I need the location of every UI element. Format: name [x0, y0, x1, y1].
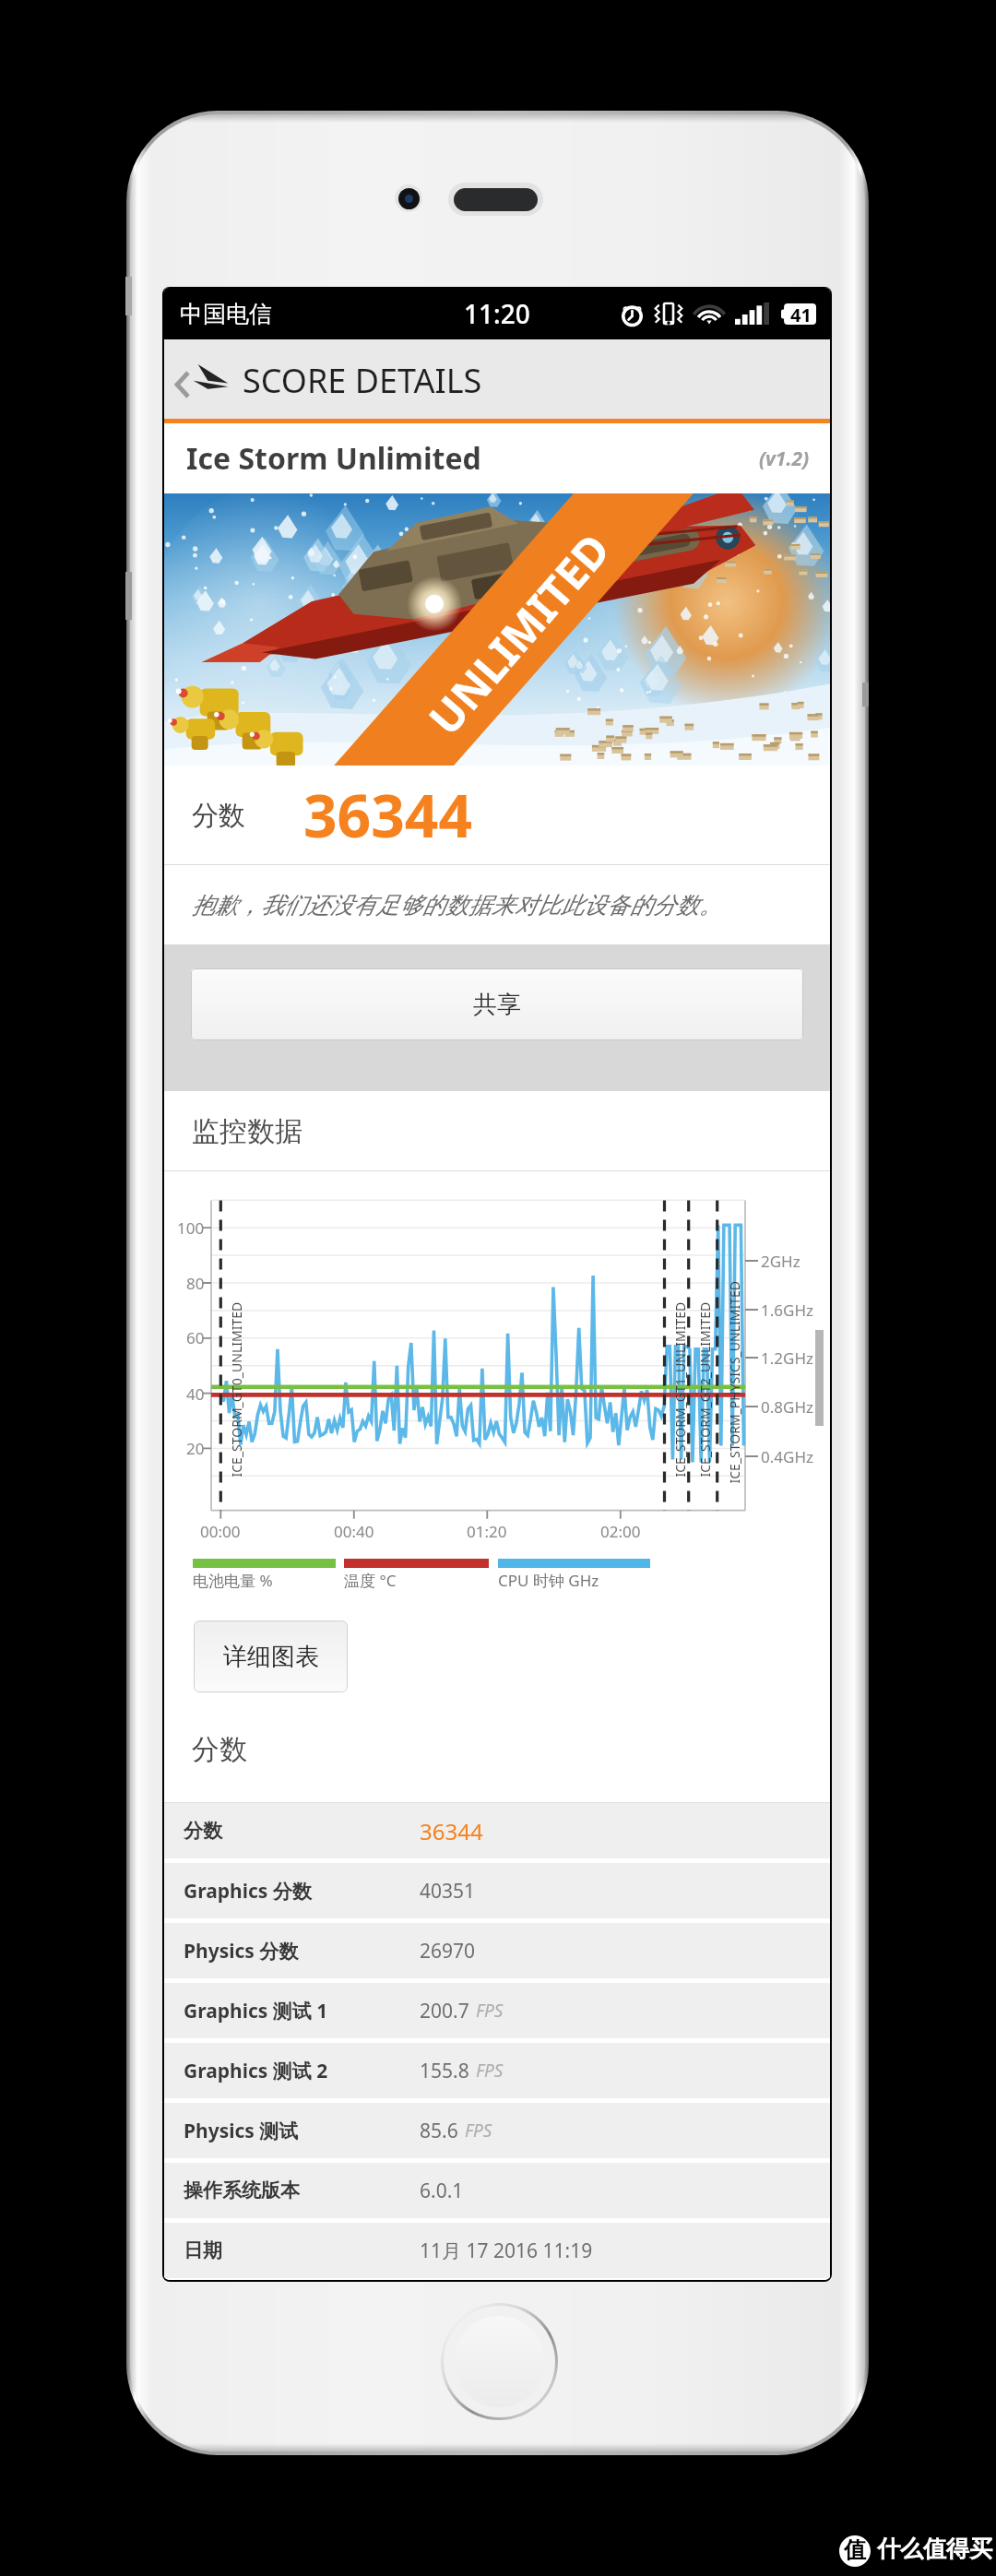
- staticText: 40351: [420, 1878, 476, 1905]
- staticText: 抱歉，我们还没有足够的数据来对比此设备的分数。: [192, 891, 722, 920]
- button[interactable]: Back: [164, 339, 830, 419]
- staticText: ICE_STORM_PHYSICS_UNLIMITED: [725, 1281, 743, 1484]
- staticText: UNLIMITED: [415, 521, 622, 747]
- staticText: Ice Storm Unlimited: [186, 438, 481, 479]
- staticText: 36344: [303, 775, 473, 855]
- staticText: 00:00: [200, 1521, 241, 1542]
- staticText: Physics 分数: [184, 1938, 420, 1965]
- staticText: FPS: [476, 2059, 504, 2083]
- staticText: 11:20: [464, 296, 530, 331]
- staticText: 40: [186, 1383, 205, 1405]
- staticText: 操作系统版本: [184, 2178, 420, 2202]
- button[interactable]: Graphics 测试 1: [164, 1983, 830, 2038]
- staticText: 1.2GHz: [761, 1347, 813, 1369]
- staticText: 分数: [192, 799, 245, 833]
- staticText: 分数: [184, 1819, 420, 1843]
- staticText: 温度 °C: [344, 1570, 397, 1591]
- staticText: FPS: [476, 1999, 504, 2023]
- staticText: Graphics 分数: [184, 1878, 420, 1905]
- button[interactable]: 分数: [164, 1803, 830, 1858]
- staticText: 200.7: [420, 1998, 469, 2024]
- staticText: 0.8GHz: [761, 1396, 813, 1418]
- staticText: 100: [177, 1217, 205, 1239]
- staticText: 00:40: [334, 1521, 374, 1542]
- staticText: ICE_STORM_GT2_UNLIMITED: [696, 1302, 713, 1477]
- staticText: FPS: [465, 2119, 492, 2143]
- staticText: 日期: [184, 2238, 420, 2262]
- staticText: CPU 时钟 GHz: [498, 1570, 599, 1591]
- staticText: 1.6GHz: [761, 1300, 813, 1321]
- staticText: ICE_STORM_GT0_UNLIMITED: [227, 1302, 245, 1477]
- staticText: 20: [186, 1438, 205, 1459]
- staticText: ICE_STORM_GT1_UNLIMITED: [671, 1302, 688, 1477]
- staticText: Graphics 测试 1: [184, 1998, 420, 2024]
- staticText: 值: [844, 2536, 866, 2564]
- button[interactable]: Graphics 分数: [164, 1863, 830, 1918]
- staticText: 41: [790, 303, 812, 324]
- button[interactable]: 详细图表: [194, 1620, 348, 1692]
- staticText: 26970: [420, 1938, 476, 1965]
- staticText: 36344: [420, 1816, 483, 1846]
- button[interactable]: 操作系统版本: [164, 2163, 830, 2218]
- staticText: 155.8: [420, 2058, 469, 2084]
- staticText: 60: [186, 1327, 205, 1348]
- staticText: 什么值得买: [877, 2534, 992, 2563]
- button[interactable]: Physics 测试: [164, 2103, 830, 2158]
- staticText: 11月 17 2016 11:19: [420, 2238, 593, 2264]
- button[interactable]: Graphics 测试 2: [164, 2043, 830, 2098]
- staticText: 中国电信: [180, 300, 272, 328]
- button[interactable]: 共享: [191, 968, 803, 1040]
- staticText: 分数: [192, 1732, 247, 1767]
- staticText: SCORE DETAILS: [243, 358, 482, 403]
- staticText: Graphics 测试 2: [184, 2058, 420, 2084]
- staticText: 0.4GHz: [761, 1446, 813, 1467]
- button[interactable]: 日期: [164, 2223, 830, 2278]
- staticText: (v1.2): [759, 445, 810, 472]
- staticText: 共享: [473, 990, 521, 1020]
- button[interactable]: Physics 分数: [164, 1923, 830, 1978]
- staticText: 2GHz: [761, 1251, 800, 1272]
- staticText: 85.6: [420, 2118, 458, 2144]
- staticText: 80: [186, 1273, 205, 1294]
- staticText: 01:20: [467, 1521, 507, 1542]
- staticText: 6.0.1: [420, 2178, 464, 2204]
- staticText: Physics 测试: [184, 2118, 420, 2144]
- staticText: 监控数据: [192, 1114, 302, 1149]
- staticText: 详细图表: [223, 1642, 319, 1672]
- staticText: 02:00: [600, 1521, 641, 1542]
- staticText: 电池电量 %: [193, 1570, 273, 1591]
